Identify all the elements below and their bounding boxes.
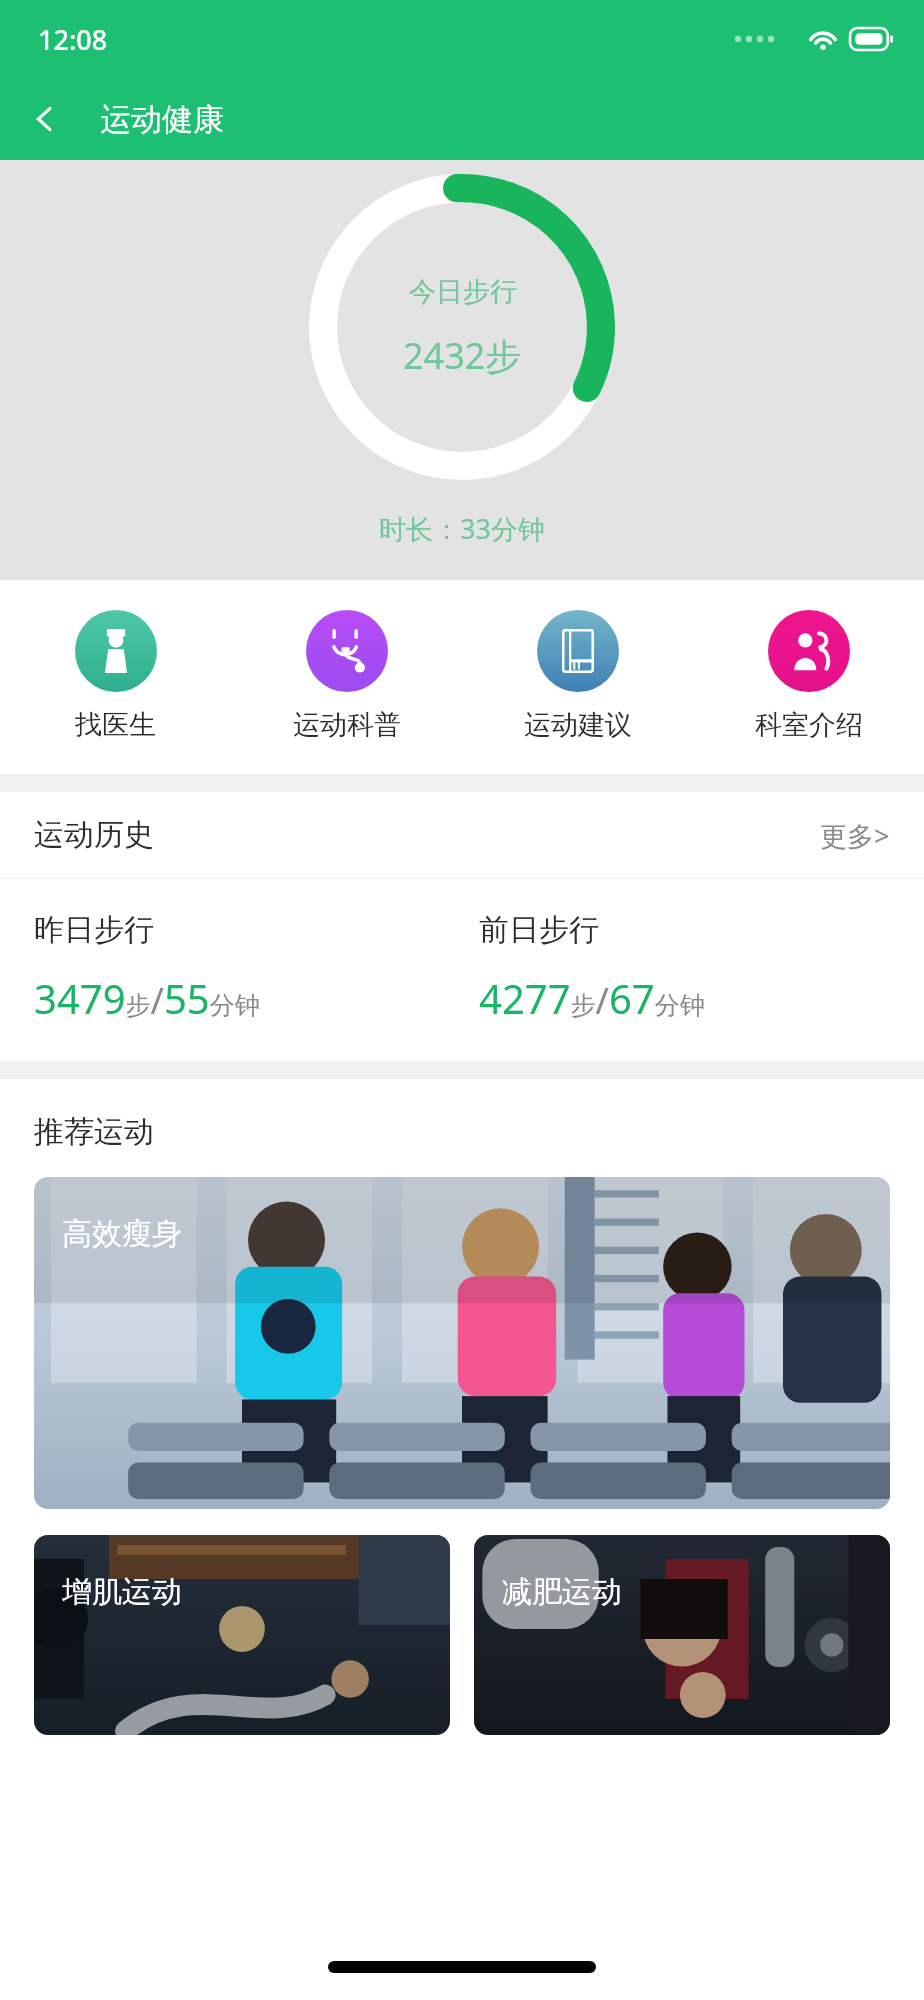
- staticText: 高效瘦身: [62, 1215, 182, 1253]
- staticText: 减肥运动: [502, 1573, 622, 1611]
- staticText: 推荐运动: [34, 1113, 154, 1151]
- staticText: 运动科普: [293, 708, 401, 742]
- staticText: 前日步行: [479, 911, 599, 949]
- button[interactable]: 找医生: [0, 606, 231, 746]
- staticText: 2432步: [403, 331, 522, 380]
- button[interactable]: 高效瘦身: [34, 1177, 890, 1509]
- button[interactable]: 前日步行: [479, 911, 924, 1025]
- button[interactable]: 运动历史: [0, 792, 924, 878]
- staticText: 时长：33分钟: [379, 510, 545, 547]
- staticText: 今日步行: [409, 275, 517, 309]
- button[interactable]: 运动科普: [231, 606, 462, 746]
- staticText: 更多>: [820, 817, 890, 854]
- button[interactable]: 科室介绍: [693, 606, 924, 746]
- button[interactable]: 运动建议: [462, 606, 693, 746]
- staticText: 昨日步行: [34, 911, 154, 949]
- staticText: 找医生: [75, 708, 156, 742]
- staticText: 增肌运动: [62, 1573, 182, 1611]
- staticText: 运动历史: [34, 816, 154, 854]
- staticText: 3479步/55分钟: [34, 971, 260, 1025]
- staticText: 12:08: [38, 21, 108, 58]
- button[interactable]: 减肥运动: [474, 1535, 890, 1735]
- staticText: 运动健康: [100, 100, 224, 139]
- button[interactable]: 昨日步行: [34, 911, 479, 1025]
- staticText: 4277步/67分钟: [479, 971, 705, 1025]
- staticText: 运动建议: [524, 708, 632, 742]
- button[interactable]: 增肌运动: [34, 1535, 450, 1735]
- staticText: 科室介绍: [755, 708, 863, 742]
- button[interactable]: Back: [14, 88, 76, 150]
